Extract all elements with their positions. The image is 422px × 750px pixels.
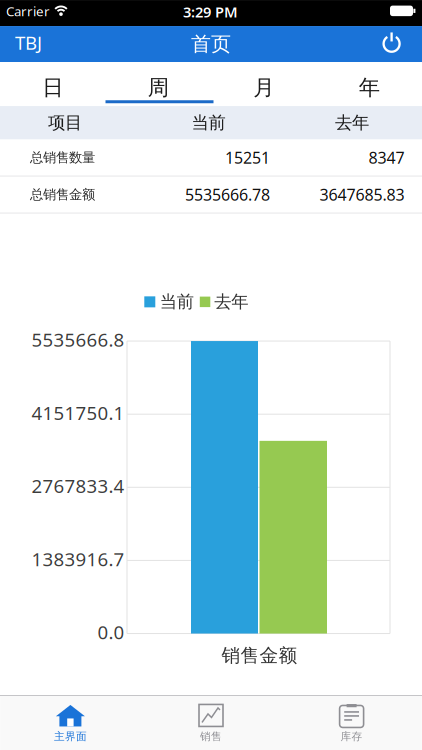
staticText: 周 xyxy=(148,74,169,101)
staticText: 总销售金额 xyxy=(30,186,95,203)
button[interactable]: 月 xyxy=(211,66,316,110)
staticText: 1383916.7 xyxy=(31,546,124,571)
staticText: 15251 xyxy=(225,147,270,168)
staticText: 当前 xyxy=(191,112,225,133)
staticText: 2767833.4 xyxy=(31,473,124,498)
staticText: Carrier xyxy=(6,2,50,20)
staticText: 5535666.8 xyxy=(31,327,124,352)
staticText: 销售金额 xyxy=(221,644,297,667)
staticText: 库存 xyxy=(341,730,363,743)
staticText: 总销售数量 xyxy=(30,149,95,166)
staticText: 日 xyxy=(42,74,63,101)
staticText: 0.0 xyxy=(97,620,124,644)
button[interactable]: 库存 xyxy=(281,696,422,750)
staticText: TBJ xyxy=(15,30,42,55)
staticText: 3647685.83 xyxy=(319,184,404,205)
staticText: 4151750.1 xyxy=(31,400,124,425)
button[interactable]: TBJ xyxy=(0,26,42,62)
staticText: 去年 xyxy=(335,112,369,133)
staticText: 年 xyxy=(359,74,380,101)
staticText: 月 xyxy=(253,74,274,101)
button[interactable]: 年 xyxy=(316,66,422,110)
staticText: 去年 xyxy=(214,291,248,312)
staticText: 项目 xyxy=(48,112,82,133)
button[interactable]: 日 xyxy=(0,66,105,110)
staticText: 销售 xyxy=(200,730,222,743)
button[interactable]: 周 xyxy=(105,66,211,110)
button[interactable]: 销售 xyxy=(141,696,281,750)
staticText: 5535666.78 xyxy=(185,184,270,205)
staticText: 主界面 xyxy=(54,730,87,743)
staticText: 当前 xyxy=(160,291,194,312)
staticText: 8347 xyxy=(368,147,404,168)
button[interactable]: 主界面 xyxy=(0,696,141,750)
staticText: 3:29 PM xyxy=(183,2,238,22)
staticText: 首页 xyxy=(191,32,231,56)
button[interactable]: 退出登录 xyxy=(381,26,422,62)
